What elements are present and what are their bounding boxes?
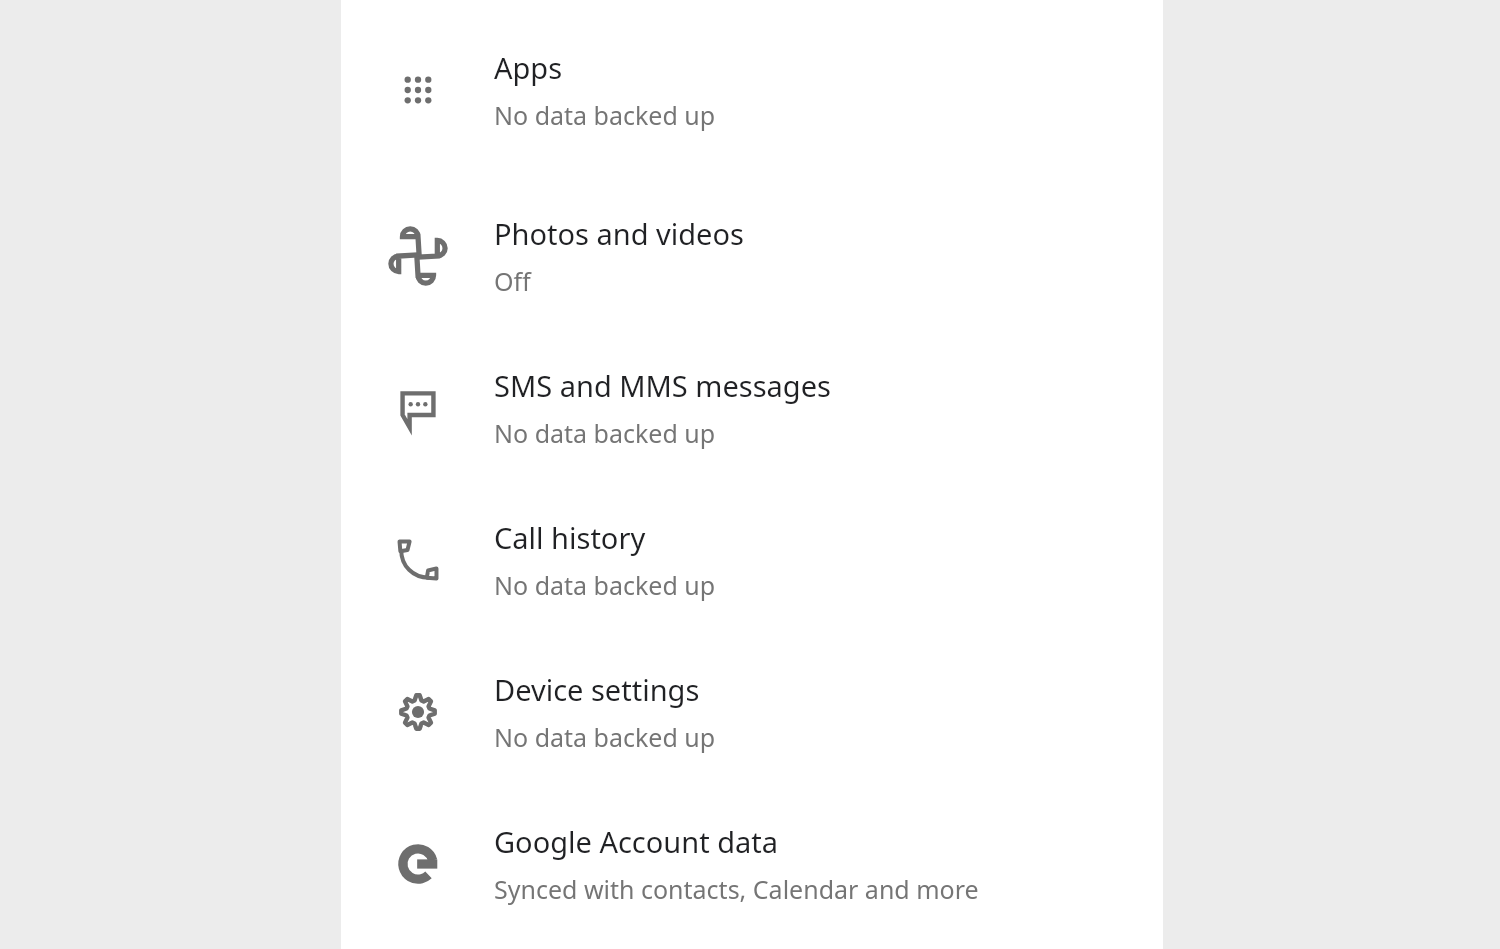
button[interactable]: Call history: [341, 484, 1163, 636]
staticText: Google Account data: [494, 822, 779, 861]
staticText: Photos and videos: [494, 214, 744, 253]
button[interactable]: Photos and videos: [341, 180, 1163, 332]
button[interactable]: Device settings: [341, 636, 1163, 788]
staticText: No data backed up: [494, 720, 716, 754]
button[interactable]: Apps: [341, 0, 1163, 180]
other: Messages: [397, 387, 439, 429]
button[interactable]: Messages: [341, 332, 1163, 484]
other: Photos and videos: [397, 235, 439, 277]
staticText: SMS and MMS messages: [494, 366, 831, 405]
staticText: Call history: [494, 518, 646, 557]
staticText: Apps: [494, 48, 563, 87]
staticText: Synced with contacts, Calendar and more: [494, 872, 979, 906]
staticText: Off: [494, 264, 531, 298]
other: Apps: [397, 69, 439, 111]
staticText: No data backed up: [494, 98, 716, 132]
other: Device settings: [397, 691, 439, 733]
staticText: Device settings: [494, 670, 700, 709]
button[interactable]: Google Account data: [341, 788, 1163, 940]
other: Call history: [397, 539, 439, 581]
other: Google Account data: [397, 843, 439, 885]
staticText: No data backed up: [494, 416, 716, 450]
staticText: No data backed up: [494, 568, 716, 602]
